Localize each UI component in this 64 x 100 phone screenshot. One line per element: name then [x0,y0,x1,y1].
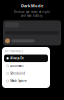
staticText: and save battery. [21,14,43,17]
button[interactable]: Scheduled [2,70,50,77]
button[interactable]: Match System [2,77,50,85]
button[interactable]: Automatic [2,62,50,70]
staticText: Always On [10,56,24,60]
staticText: APPEARANCE [5,49,23,53]
staticText: Automatic [10,64,23,68]
button[interactable]: Always On [4,54,48,62]
staticText: Scheduled [10,72,25,75]
staticText: Reduce eye strain at night [14,10,50,14]
staticText: Dark Mode [21,3,43,8]
staticText: Match System [10,79,26,83]
